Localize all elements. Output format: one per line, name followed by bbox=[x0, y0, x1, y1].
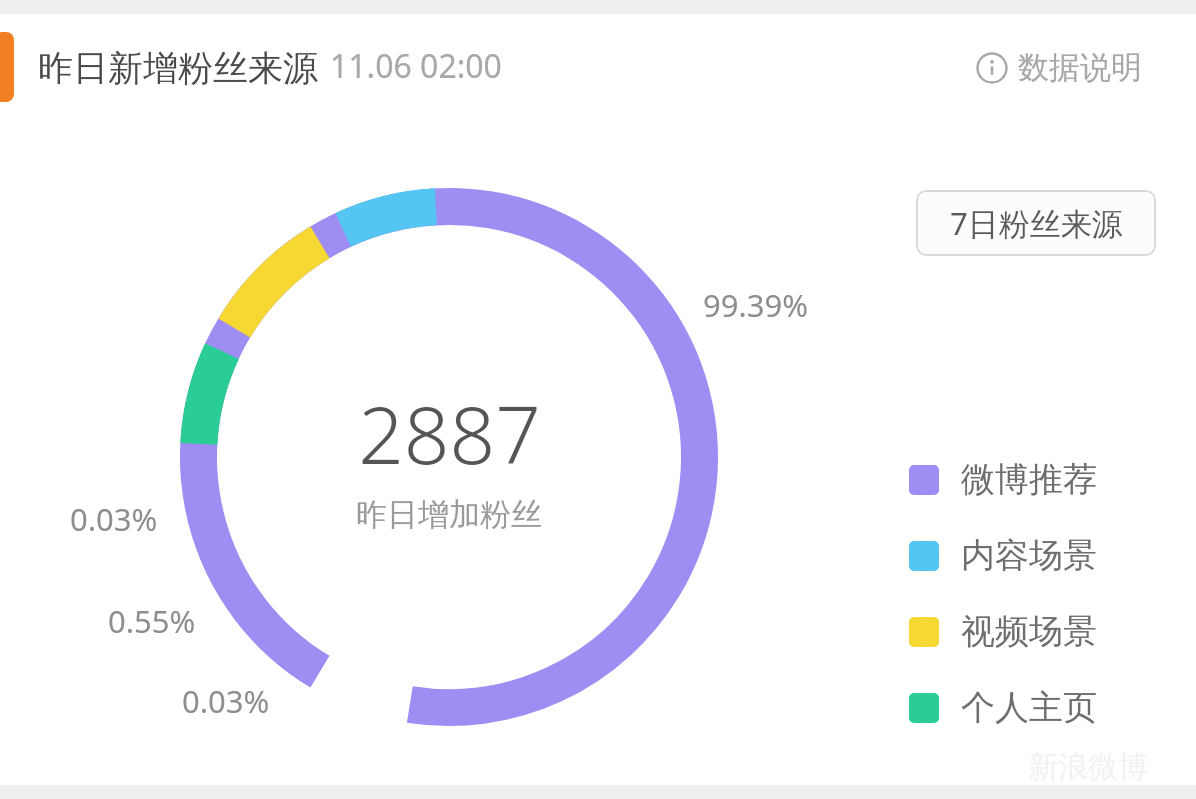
button[interactable]: 个人主页 bbox=[909, 686, 1103, 729]
staticText: 微博推荐 bbox=[961, 458, 1097, 501]
staticText: 个人主页 bbox=[961, 686, 1097, 729]
staticText: 新浪微博 bbox=[1028, 748, 1148, 786]
button[interactable]: 微博推荐 bbox=[909, 458, 1103, 501]
staticText: 0.03% bbox=[182, 680, 270, 722]
staticText: 0.03% bbox=[70, 498, 158, 540]
staticText: 2887 bbox=[358, 378, 541, 487]
staticText: 0.55% bbox=[108, 600, 196, 642]
staticText: 99.39% bbox=[703, 284, 808, 326]
staticText: 昨日增加粉丝 bbox=[356, 495, 542, 534]
staticText: 视频场景 bbox=[961, 610, 1097, 653]
staticText: 数据说明 bbox=[1018, 48, 1142, 87]
staticText: 昨日新增粉丝来源 bbox=[38, 46, 318, 90]
button[interactable]: 数据说明 bbox=[972, 46, 1146, 89]
staticText: 7日粉丝来源 bbox=[950, 202, 1123, 244]
staticText: 内容场景 bbox=[961, 534, 1097, 577]
staticText: 11.06 02:00 bbox=[330, 44, 502, 88]
button[interactable]: 内容场景 bbox=[909, 534, 1103, 577]
button[interactable]: 7日粉丝来源 bbox=[916, 190, 1156, 256]
button[interactable]: 视频场景 bbox=[909, 610, 1103, 653]
